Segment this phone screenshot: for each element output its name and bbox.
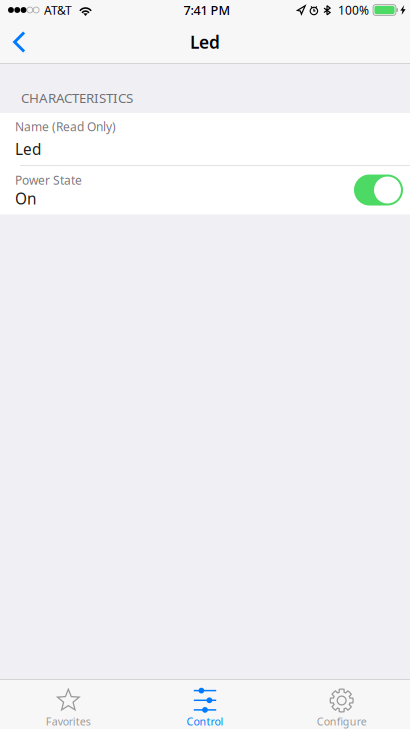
button[interactable]: Configure [273, 679, 410, 729]
staticText: Led [190, 30, 220, 54]
button[interactable]: Power State, On [354, 174, 403, 205]
staticText: Led [15, 139, 41, 160]
staticText: Favorites [46, 714, 91, 728]
staticText: 100% [338, 2, 369, 18]
button[interactable]: Control [137, 679, 273, 729]
button[interactable]: Favorites [0, 679, 137, 729]
staticText: Name (Read Only) [15, 118, 116, 135]
button[interactable]: Back [0, 20, 42, 63]
staticText: Control [186, 714, 223, 728]
staticText: Configure [317, 714, 367, 728]
staticText: AT&T [44, 2, 72, 18]
staticText: On [15, 188, 36, 209]
staticText: Power State [15, 172, 82, 188]
staticText: 7:41 PM [183, 1, 230, 19]
staticText: CHARACTERISTICS [21, 89, 133, 107]
